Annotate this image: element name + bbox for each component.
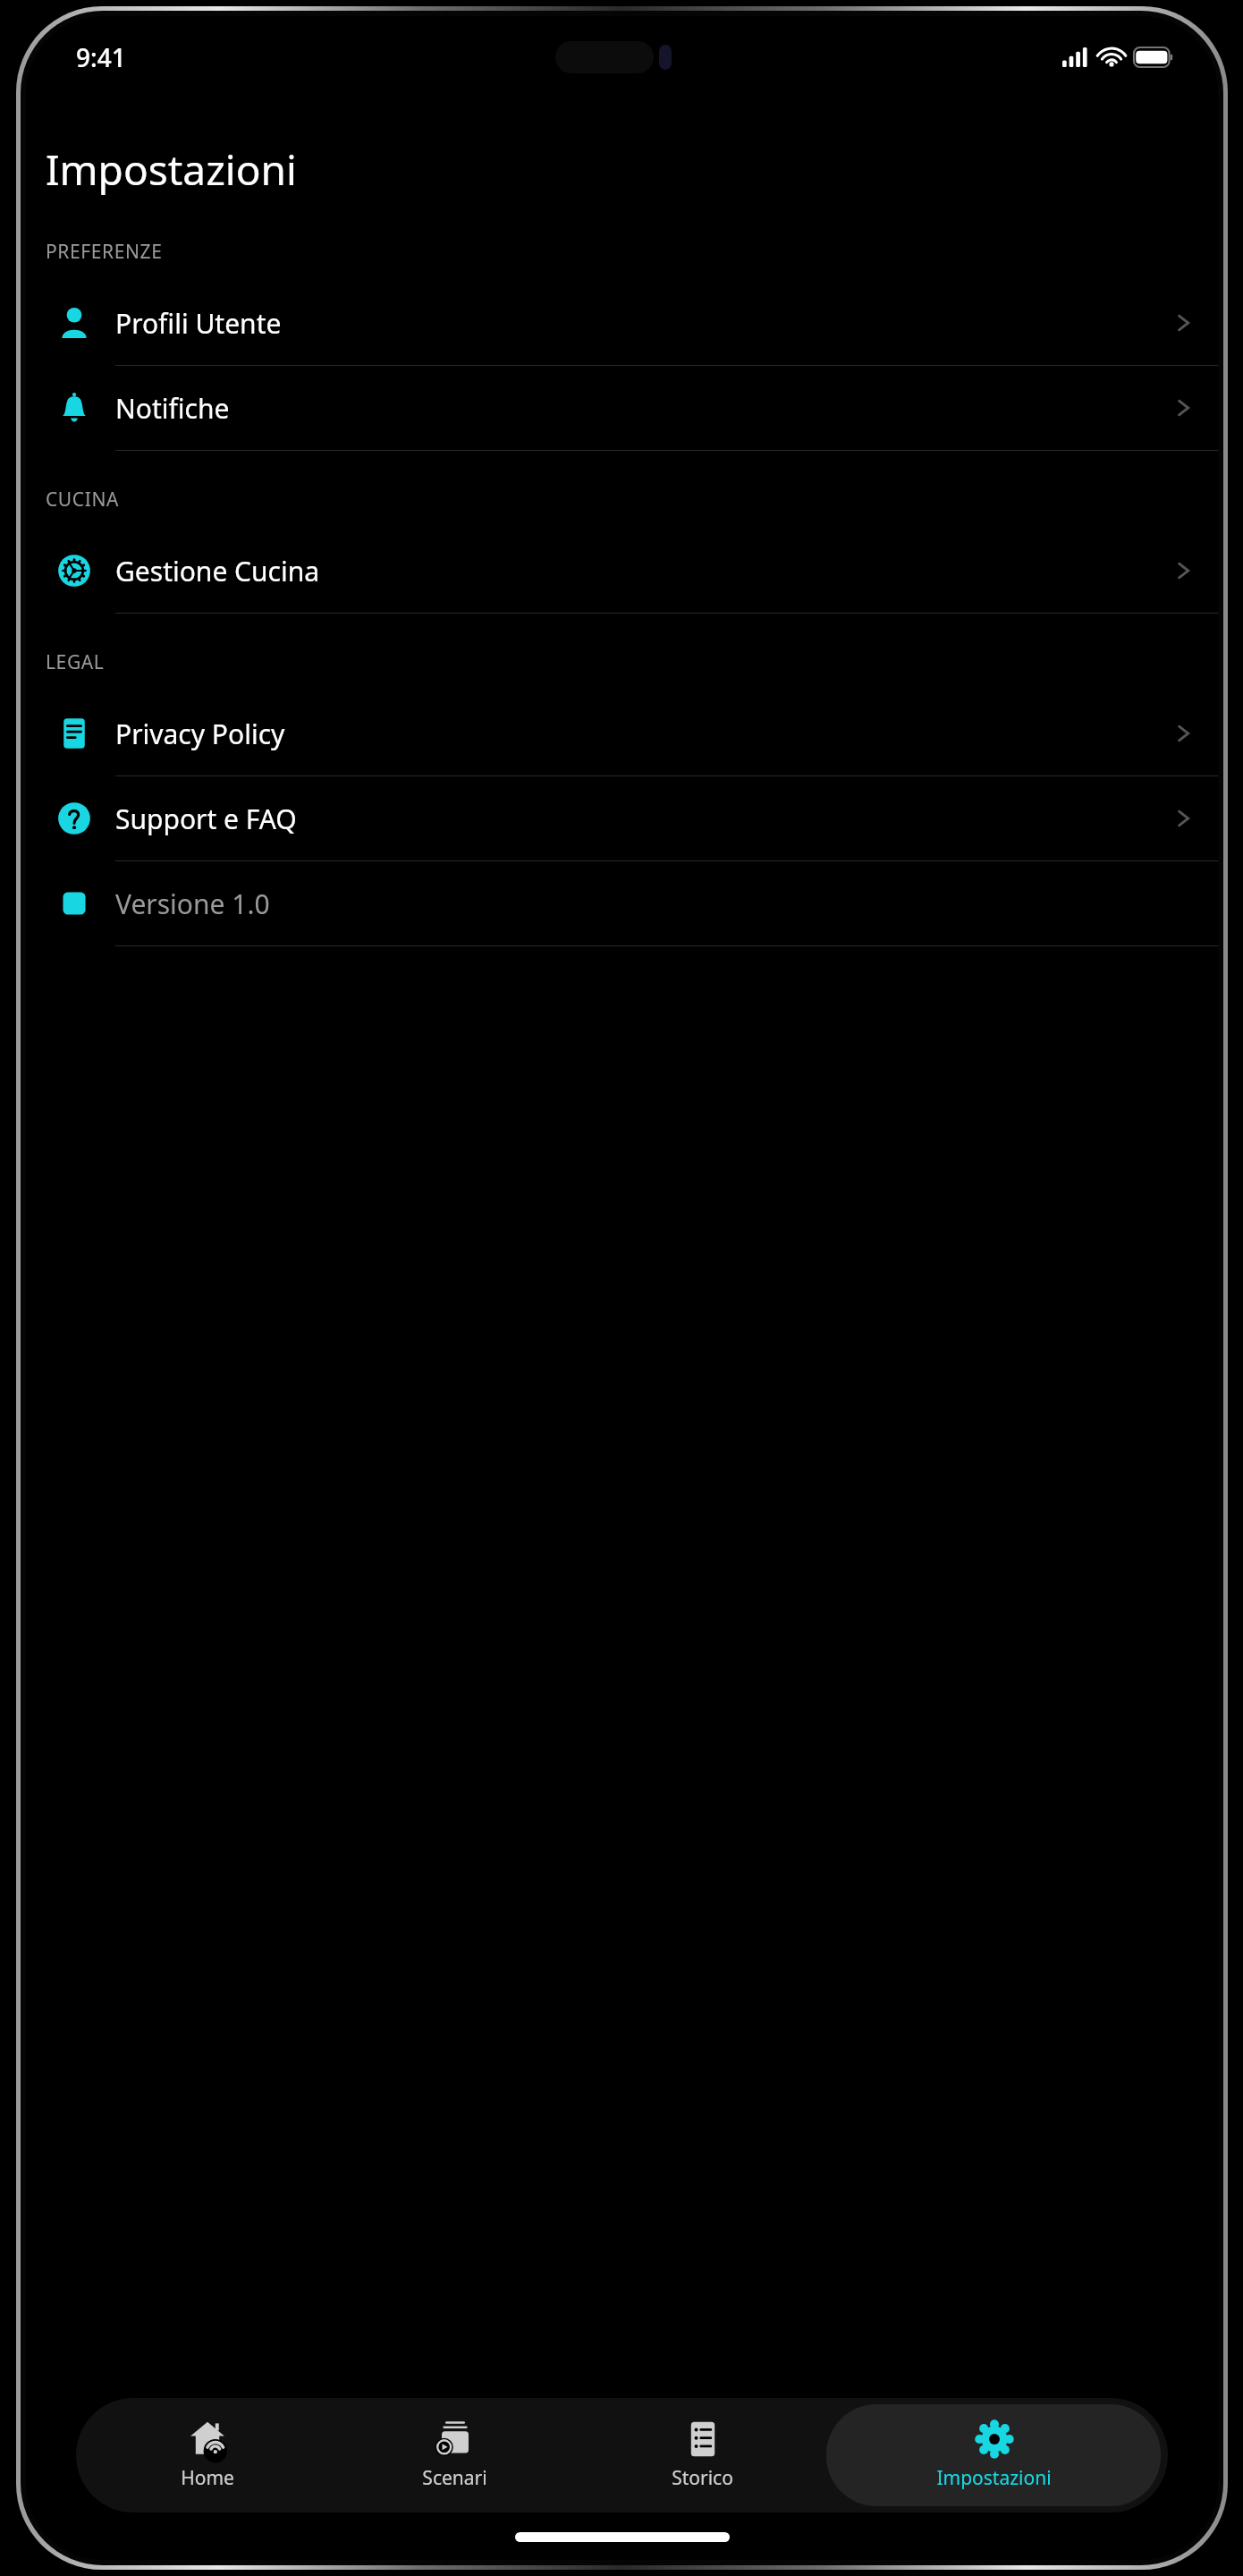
staticText: Notifiche bbox=[115, 390, 230, 427]
button[interactable]: Gestione Cucina bbox=[26, 529, 1218, 614]
staticText: 9:41 bbox=[76, 40, 126, 74]
staticText: Gestione Cucina bbox=[115, 553, 320, 589]
button[interactable]: Profili Utente bbox=[26, 281, 1218, 366]
button[interactable]: Impostazioni bbox=[826, 2404, 1161, 2506]
staticText: Impostazioni bbox=[46, 141, 297, 198]
staticText: Profili Utente bbox=[115, 305, 282, 342]
staticText: Home bbox=[181, 2465, 234, 2491]
button[interactable]: Versione 1.0 bbox=[26, 861, 1218, 946]
staticText: LEGAL bbox=[46, 649, 105, 675]
button[interactable]: Home bbox=[83, 2404, 331, 2506]
staticText: Impostazioni bbox=[936, 2465, 1052, 2491]
button[interactable]: Notifiche bbox=[26, 366, 1218, 451]
staticText: Storico bbox=[672, 2465, 733, 2491]
staticText: Support e FAQ bbox=[115, 801, 297, 837]
staticText: PREFERENZE bbox=[46, 239, 163, 265]
button[interactable]: Storico bbox=[579, 2404, 826, 2506]
staticText: Scenari bbox=[422, 2465, 487, 2491]
button[interactable]: Privacy Policy bbox=[26, 691, 1218, 776]
button[interactable]: Support e FAQ bbox=[26, 776, 1218, 861]
staticText: Versione 1.0 bbox=[115, 885, 270, 922]
staticText: Privacy Policy bbox=[115, 716, 285, 752]
button[interactable]: Scenari bbox=[331, 2404, 579, 2506]
staticText: CUCINA bbox=[46, 487, 119, 513]
